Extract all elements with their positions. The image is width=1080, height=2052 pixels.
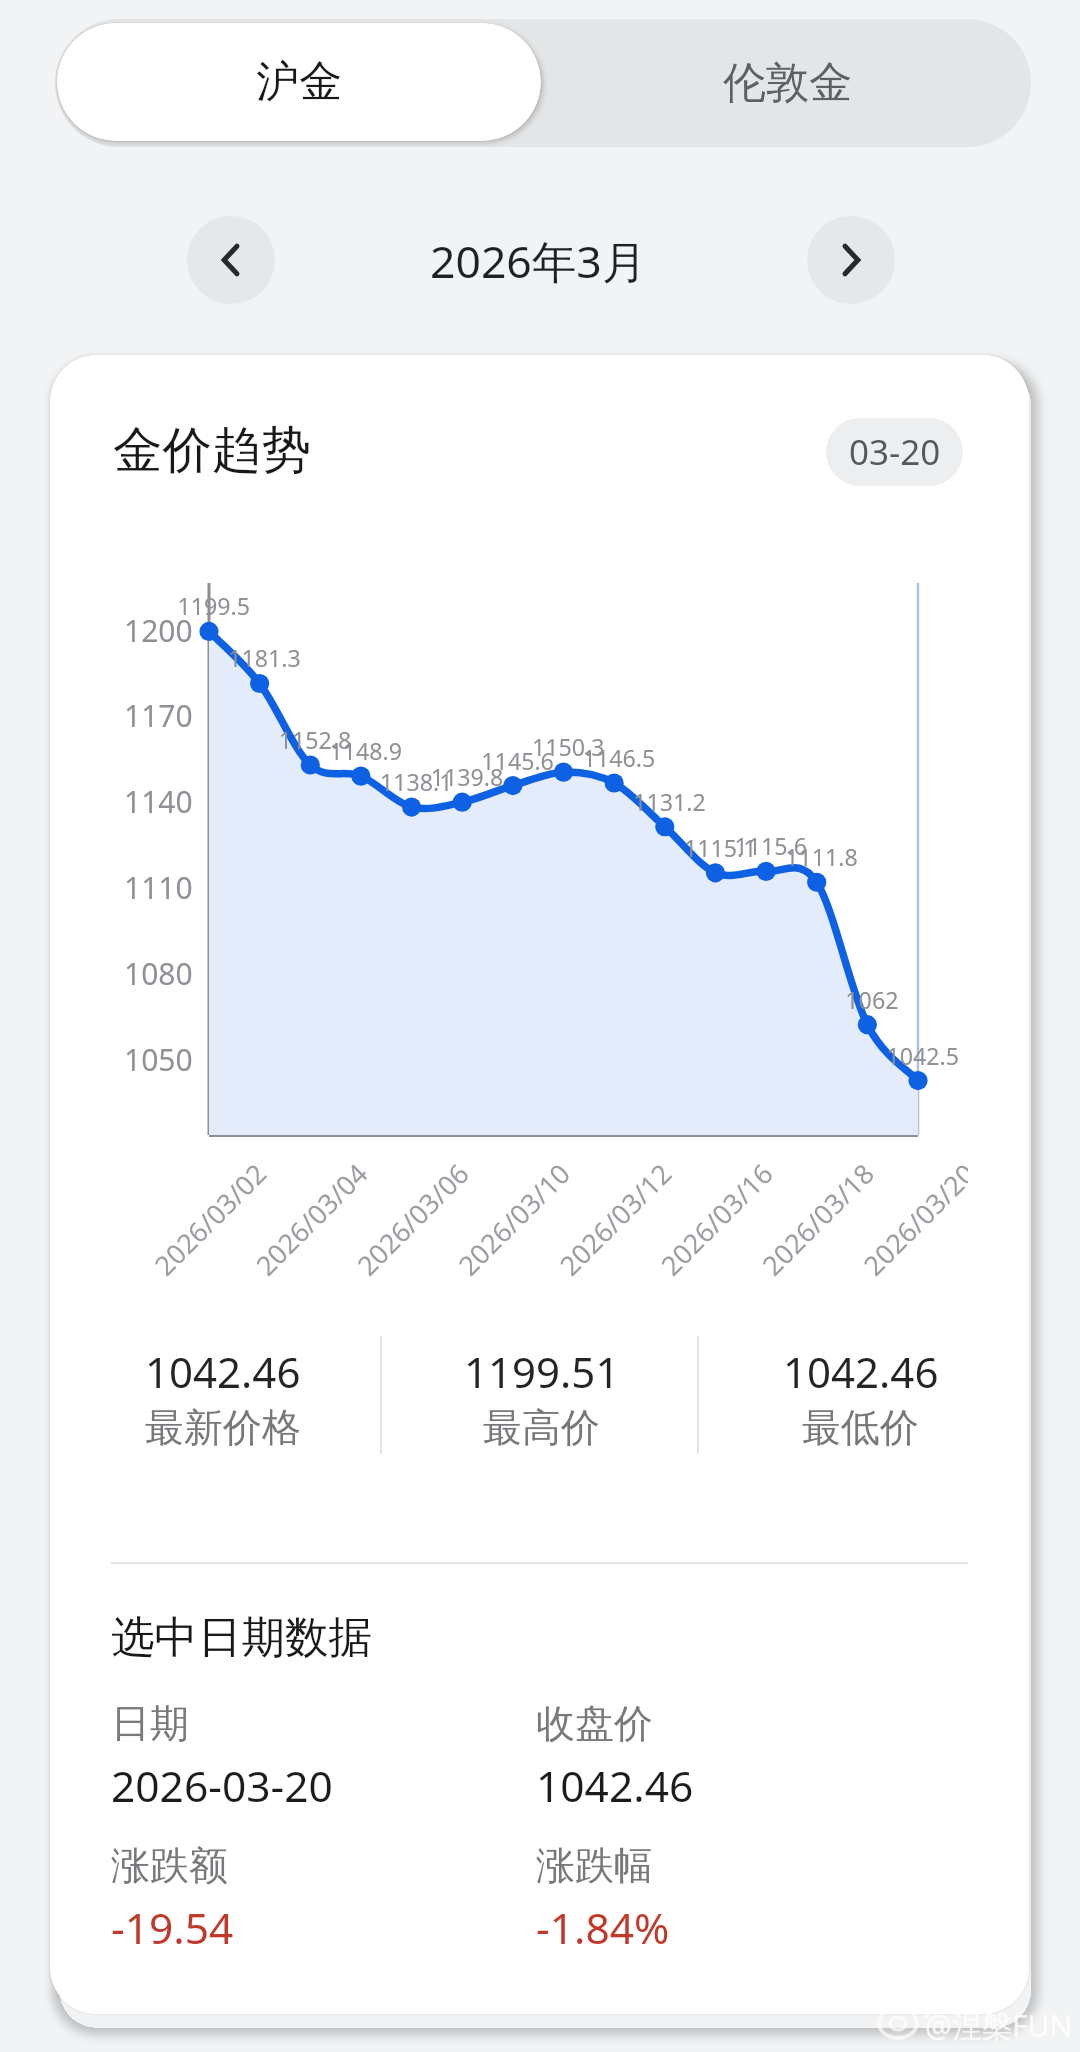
button[interactable]: 03-20 [826,418,963,486]
staticText: 1042.46 [145,1343,301,1400]
staticText: 日期 [111,1699,189,1748]
staticText: -19.54 [111,1899,234,1957]
staticText: 收盘价 [536,1699,653,1748]
button[interactable]: Previous month [187,216,275,304]
staticText: 选中日期数据 [111,1610,372,1665]
staticText: 金价趋势 [113,419,311,481]
staticText: 2026-03-20 [111,1757,333,1815]
staticText: 1042.46 [536,1757,694,1815]
staticText: 涨跌额 [111,1841,228,1890]
staticText: 1199.51 [464,1343,620,1400]
button[interactable]: 沪金 [57,23,541,141]
button[interactable]: 伦敦金 [543,19,1031,147]
staticText: 03-20 [849,428,941,476]
staticText: 最高价 [483,1403,600,1452]
staticText: 最低价 [802,1403,919,1452]
staticText: 最新价格 [145,1403,301,1452]
staticText: 沪金 [256,55,342,109]
staticText: -1.84% [536,1899,670,1957]
staticText: 2026年3月 [430,230,647,291]
staticText: 涨跌幅 [536,1841,653,1890]
staticText: 伦敦金 [723,56,852,110]
staticText: 1042.46 [783,1343,939,1400]
button[interactable]: Next month [807,216,895,304]
